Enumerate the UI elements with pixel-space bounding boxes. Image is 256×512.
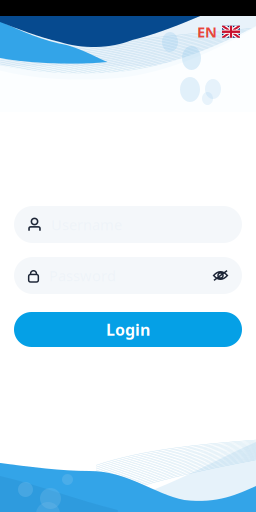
staticText: Login: [106, 319, 150, 340]
button[interactable]: EN: [191, 18, 246, 45]
button[interactable]: Login: [14, 312, 242, 347]
button[interactable]: Show password: [213, 269, 228, 281]
staticText: EN: [197, 22, 217, 41]
